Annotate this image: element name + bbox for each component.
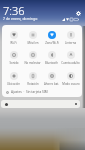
button[interactable]: Modo oscuro (61, 72, 80, 86)
staticText: 7 de enero, domingo (3, 16, 38, 21)
staticText: Ajustes · Sin tarjeta SIM (11, 90, 48, 94)
button[interactable]: Bluetooth (42, 51, 61, 65)
button[interactable]: Móvil en (23, 31, 42, 45)
staticText: Linterna (65, 41, 76, 45)
button[interactable]: Settings (74, 9, 83, 18)
staticText: Wi-Fi (10, 41, 17, 45)
button[interactable]: Wi-Fi (4, 31, 23, 45)
button[interactable]: Rotación (23, 72, 42, 86)
button[interactable]: Ajustes · Sin tarjeta SIM (2, 88, 82, 96)
button[interactable]: Zona Wi-Fi (42, 31, 61, 45)
staticText: Cuenta adulto (61, 61, 80, 65)
button[interactable]: Ubicación (4, 72, 23, 86)
button[interactable]: No molestar (23, 51, 42, 65)
staticText: 7:36 (3, 3, 25, 18)
button[interactable]: Linterna (61, 31, 80, 45)
button[interactable] (1, 100, 80, 108)
staticText: Móvil en (27, 41, 39, 45)
staticText: Rotación (27, 82, 39, 86)
staticText: Sonido (9, 61, 19, 65)
staticText: Zona Wi-Fi (45, 41, 59, 45)
staticText: Ahorro bat. (44, 82, 59, 86)
button[interactable]: Sonido (4, 51, 23, 65)
staticText: No molestar (24, 61, 41, 65)
staticText: Ubicación (7, 82, 20, 86)
button[interactable]: Cuenta adulto (61, 51, 80, 65)
staticText: Bluetooth (45, 61, 58, 65)
staticText: Modo oscuro (62, 82, 80, 86)
button[interactable]: Ahorro bat. (42, 72, 61, 86)
